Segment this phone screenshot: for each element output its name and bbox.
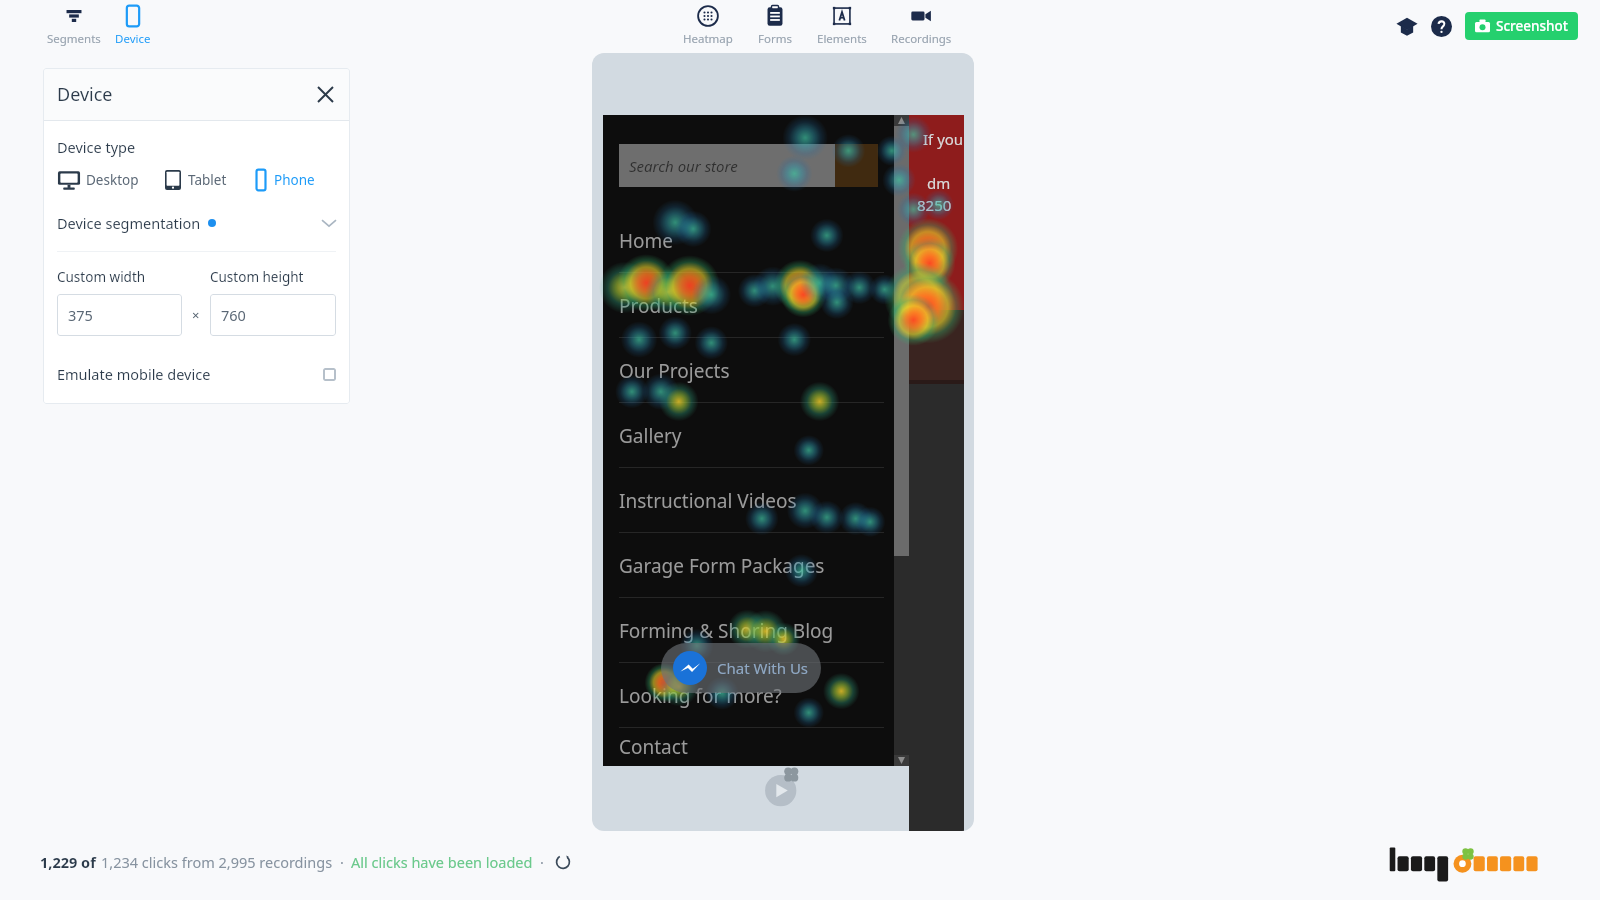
button[interactable]: Device (104, 0, 162, 52)
button[interactable]: Close (312, 81, 338, 107)
staticText: Custom width (57, 268, 146, 286)
button[interactable]: Search our store (619, 144, 878, 187)
staticText: · (340, 852, 344, 872)
staticText: · (540, 852, 544, 872)
button[interactable]: Heatmap (672, 0, 744, 52)
staticText: × (192, 306, 200, 324)
button[interactable]: Forming & Shoring Blog (603, 598, 894, 663)
staticText: Emulate mobile device (57, 364, 211, 384)
staticText: Garage Form Packages (619, 553, 825, 579)
staticText: Custom height (210, 268, 304, 286)
staticText: Gallery (619, 423, 682, 449)
button[interactable]: Chat With Us (661, 643, 821, 693)
staticText: Device (115, 31, 151, 47)
button[interactable]: Products (603, 273, 894, 338)
button[interactable]: Emulate mobile device (57, 364, 336, 384)
staticText: Device (57, 82, 113, 107)
button[interactable]: Help (1427, 12, 1455, 40)
staticText: Recordings (891, 31, 952, 47)
button[interactable]: Play recording (760, 763, 806, 809)
button[interactable]: Garage Form Packages (603, 533, 894, 598)
button[interactable]: Looking for more? (603, 663, 894, 728)
button[interactable]: Desktop (57, 169, 139, 191)
button[interactable]: 1,229 of (40, 852, 96, 872)
button[interactable]: Tablet (163, 169, 227, 191)
staticText: All clicks have been loaded (351, 852, 533, 872)
staticText: 760 (221, 305, 246, 325)
button[interactable]: All clicks have been loaded (351, 852, 533, 872)
button[interactable]: 760 (210, 294, 336, 336)
staticText: Looking for more? (619, 683, 782, 709)
button[interactable]: 375 (57, 294, 182, 336)
staticText: Segments (47, 31, 101, 47)
staticText: Device type (57, 137, 136, 157)
staticText: Tablet (188, 171, 227, 189)
staticText: Forming & Shoring Blog (619, 618, 834, 644)
button[interactable]: Learn (1393, 12, 1421, 40)
staticText: Home (619, 228, 674, 254)
staticText: Contact (619, 734, 688, 760)
staticText: Elements (817, 31, 867, 47)
button[interactable]: Lucky Orange (1386, 844, 1572, 878)
button[interactable]: Segments (44, 0, 104, 52)
staticText: Device segmentation (57, 213, 201, 233)
button[interactable]: Phone (253, 169, 315, 191)
staticText: 8250 (917, 195, 952, 215)
staticText: Heatmap (683, 31, 733, 47)
staticText: 1,229 of (40, 852, 96, 872)
staticText: Chat With Us (717, 658, 809, 678)
button[interactable]: Search (835, 144, 878, 187)
staticText: Products (619, 293, 698, 319)
staticText: Phone (274, 171, 315, 189)
button[interactable]: Forms (744, 0, 806, 52)
button[interactable]: Device segmentation (57, 213, 336, 233)
button[interactable]: Elements (806, 0, 878, 52)
staticText: Our Projects (619, 358, 730, 384)
staticText: Desktop (86, 171, 139, 189)
button[interactable]: Home (603, 208, 894, 273)
button[interactable]: Refresh (553, 852, 573, 872)
staticText: dm (927, 173, 951, 193)
button[interactable]: Screenshot (1465, 12, 1578, 40)
button[interactable]: Our Projects (603, 338, 894, 403)
button[interactable]: Instructional Videos (603, 468, 894, 533)
button[interactable]: Contact (603, 728, 894, 766)
staticText: Instructional Videos (619, 488, 797, 514)
staticText: 1,234 clicks from 2,995 recordings (101, 852, 333, 872)
staticText: If you (923, 129, 964, 149)
staticText: Forms (758, 31, 792, 47)
staticText: 375 (68, 305, 93, 325)
staticText: Screenshot (1496, 17, 1568, 35)
staticText: Search our store (629, 156, 738, 176)
button[interactable]: Gallery (603, 403, 894, 468)
button[interactable]: Recordings (878, 0, 964, 52)
